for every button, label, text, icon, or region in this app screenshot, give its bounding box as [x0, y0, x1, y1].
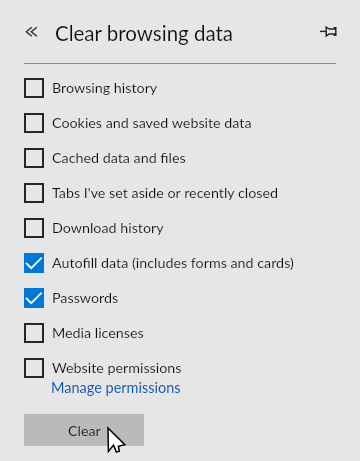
- staticText: Autofill data (includes forms and cards): [52, 254, 294, 271]
- button[interactable]: Clear: [24, 414, 144, 446]
- button[interactable]: Website permissions: [24, 358, 324, 378]
- staticText: Clear: [68, 422, 101, 439]
- staticText: Cached data and files: [52, 149, 186, 166]
- staticText: Passwords: [52, 289, 119, 306]
- staticText: Clear browsing data: [55, 21, 234, 46]
- button[interactable]: Cookies and saved website data: [24, 113, 324, 133]
- staticText: Cookies and saved website data: [52, 114, 252, 131]
- staticText: Tabs I've set aside or recently closed: [52, 184, 278, 201]
- button[interactable]: Passwords: [24, 288, 324, 308]
- staticText: Media licenses: [52, 324, 144, 341]
- button[interactable]: Cached data and files: [24, 148, 324, 168]
- staticText: Manage permissions: [51, 379, 181, 396]
- staticText: Website permissions: [52, 359, 182, 376]
- staticText: Download history: [52, 219, 164, 236]
- button[interactable]: Manage permissions: [51, 379, 181, 396]
- button[interactable]: Autofill data (includes forms and cards): [24, 253, 324, 273]
- button[interactable]: Tabs I've set aside or recently closed: [24, 183, 324, 203]
- button[interactable]: Media licenses: [24, 323, 324, 343]
- staticText: Browsing history: [52, 79, 158, 96]
- button[interactable]: Download history: [24, 218, 324, 238]
- button[interactable]: Browsing history: [24, 78, 324, 98]
- button[interactable]: Back: [20, 21, 44, 45]
- button[interactable]: Pin: [319, 23, 339, 43]
